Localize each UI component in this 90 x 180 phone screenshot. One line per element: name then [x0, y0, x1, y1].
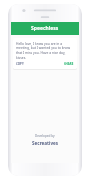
- button[interactable]: Speechless: [11, 22, 79, 35]
- staticText: Speechless: [31, 25, 59, 32]
- button[interactable]: Hello love, I know you are in a meeting,…: [13, 38, 77, 69]
- button[interactable]: COPY: [16, 62, 24, 66]
- button[interactable]: SHARE: [64, 62, 74, 66]
- staticText: COPY: [16, 62, 24, 66]
- staticText: Hello love, I know you are in a meeting,…: [16, 41, 74, 59]
- staticText: Secreatives: [32, 140, 59, 146]
- button[interactable]: Developed by: [11, 134, 79, 146]
- staticText: SHARE: [64, 62, 74, 66]
- staticText: Developed by: [35, 134, 55, 138]
